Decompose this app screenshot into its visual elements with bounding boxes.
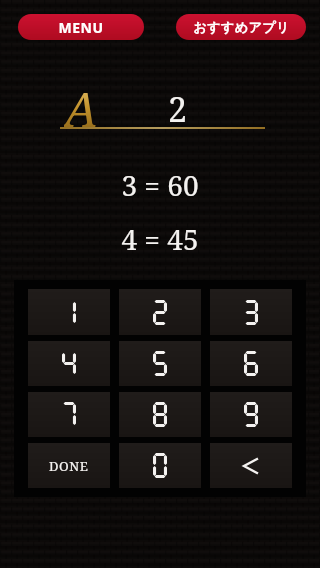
button[interactable]	[119, 341, 201, 386]
button[interactable]	[119, 392, 201, 437]
staticText: おすすめアプリ	[193, 19, 290, 35]
button[interactable]	[119, 289, 201, 335]
button[interactable]: MENU	[18, 14, 144, 40]
button[interactable]	[210, 289, 292, 335]
button[interactable]	[28, 392, 110, 437]
button[interactable]	[210, 392, 292, 437]
staticText: DONE	[49, 457, 89, 475]
button[interactable]	[28, 341, 110, 386]
button[interactable]	[28, 289, 110, 335]
button[interactable]	[210, 341, 292, 386]
button[interactable]: Backspace	[210, 443, 292, 488]
staticText: 3 = 60	[121, 166, 199, 204]
button[interactable]: DONE	[28, 443, 110, 488]
button[interactable]: おすすめアプリ	[176, 14, 306, 40]
staticText: 2	[168, 86, 188, 132]
button[interactable]	[119, 443, 201, 488]
staticText: MENU	[58, 18, 104, 37]
staticText: 4 = 45	[121, 220, 199, 258]
staticText: A	[64, 76, 98, 136]
